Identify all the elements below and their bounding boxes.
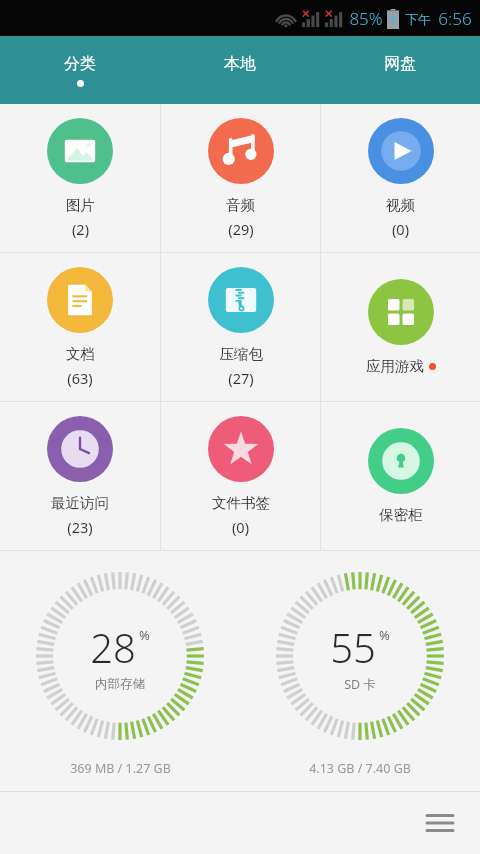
- staticText: (27): [228, 368, 254, 388]
- staticText: 网盘: [384, 54, 416, 74]
- staticText: 应用游戏: [366, 357, 424, 375]
- button[interactable]: 文档: [0, 253, 160, 401]
- staticText: 内部存储: [95, 676, 145, 692]
- staticText: 图片: [66, 196, 95, 214]
- staticText: 最近访问: [51, 494, 109, 512]
- button[interactable]: 28: [0, 566, 240, 746]
- button[interactable]: 文件书签: [161, 402, 320, 550]
- staticText: (0): [392, 219, 409, 239]
- staticText: (63): [67, 368, 93, 388]
- button[interactable]: 本地: [160, 36, 320, 104]
- button[interactable]: 最近访问: [0, 402, 160, 550]
- staticText: 文件书签: [212, 494, 270, 512]
- staticText: 音频: [226, 196, 255, 214]
- button[interactable]: 应用游戏: [321, 253, 480, 401]
- staticText: 压缩包: [219, 345, 263, 363]
- staticText: 文档: [66, 345, 95, 363]
- button[interactable]: 音频: [161, 104, 320, 252]
- staticText: (29): [228, 219, 254, 239]
- staticText: 4.13 GB / 7.40 GB: [309, 760, 411, 777]
- button[interactable]: 55: [240, 566, 480, 746]
- staticText: %: [379, 626, 390, 644]
- staticText: 369 MB / 1.27 GB: [70, 760, 171, 777]
- staticText: (23): [67, 517, 93, 537]
- button[interactable]: 分类: [0, 36, 160, 104]
- staticText: 85%: [349, 7, 383, 30]
- staticText: (0): [232, 517, 249, 537]
- button[interactable]: 视频: [321, 104, 480, 252]
- button[interactable]: Menu: [416, 799, 464, 847]
- button[interactable]: 保密柜: [321, 402, 480, 550]
- staticText: %: [139, 626, 150, 644]
- staticText: 视频: [386, 196, 415, 214]
- staticText: 下午: [405, 11, 431, 27]
- staticText: 本地: [224, 54, 256, 74]
- button[interactable]: 压缩包: [161, 253, 320, 401]
- staticText: SD 卡: [344, 676, 376, 693]
- staticText: 28: [90, 620, 136, 674]
- staticText: 55: [330, 620, 376, 674]
- staticText: (2): [72, 219, 89, 239]
- button[interactable]: 图片: [0, 104, 160, 252]
- staticText: 保密柜: [379, 506, 423, 524]
- staticText: 6:56: [438, 7, 472, 30]
- staticText: 分类: [64, 54, 96, 74]
- button[interactable]: 网盘: [320, 36, 480, 104]
